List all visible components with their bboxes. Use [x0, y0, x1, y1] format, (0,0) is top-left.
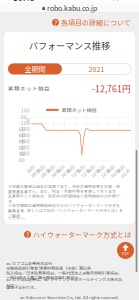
staticText: TOP — [121, 251, 129, 256]
staticText: 10:45 — [13, 0, 35, 3]
staticText: 10000 — [21, 107, 30, 120]
staticText: ? — [54, 17, 57, 28]
staticText: -60000 — [19, 150, 30, 163]
staticText: au Kabucom Securities Co., Ltd. All righ… — [20, 294, 119, 300]
staticText: 2021/10/01 — [48, 165, 58, 177]
staticText: 累積ネット損益 — [61, 106, 96, 114]
staticText: -12,761円 — [92, 82, 131, 95]
button[interactable]: ? — [0, 230, 139, 239]
staticText: -10000 — [19, 120, 30, 133]
staticText: 2021/09/01 — [28, 165, 38, 177]
staticText: ? — [26, 229, 29, 240]
staticText: 2021/11/01 — [68, 165, 78, 177]
staticText: -30000 — [19, 132, 30, 145]
staticText: 各項目の詳細について — [61, 17, 131, 27]
staticText: -50000 — [19, 144, 30, 157]
staticText: 一般社団法人第二種金融商品取引業協会 — [6, 274, 78, 280]
staticText: au カブコム証券は、au フィナンシャルホールディングス株式会社の — [6, 276, 122, 288]
staticText: 2022/01/05 — [108, 165, 118, 177]
staticText: robo.kabu.co.jp — [47, 3, 97, 13]
staticText: 2021/10/18 — [58, 165, 68, 177]
staticText: ではありません。また、税金・手数料等を考慮しておりません。 — [8, 188, 116, 199]
staticText: 2021/12/16 — [98, 165, 108, 177]
staticText: 2021/12/01 — [88, 165, 98, 177]
staticText: 4G — [111, 0, 120, 2]
staticText: -20000 — [19, 126, 30, 139]
staticText: ください。 — [8, 215, 28, 221]
staticText: ※成功報酬は運用開始時点からのハイウォーターマーク方式を採用して — [8, 203, 120, 214]
button[interactable]: 2021 — [62, 63, 131, 74]
staticText: 全期間 — [24, 64, 45, 74]
staticText: au カブコム証券株式会社 — [6, 260, 52, 266]
button[interactable]: Scroll to top — [117, 242, 134, 259]
staticText: パフォーマンス推移 — [29, 39, 110, 52]
staticText: 2021/11/16 — [78, 165, 88, 177]
staticText: 累積ネット損益 — [8, 84, 50, 92]
staticText: 0 — [27, 117, 30, 123]
staticText: 2022/01/20 — [118, 165, 128, 177]
staticText: ※累積ネット損益は、設定来の評価損益と実現損益の合計額です。 — [8, 193, 120, 204]
staticText: 加入協会／日本証券業協会、一般社団法人金融先物取引業協会、 — [6, 270, 122, 276]
button[interactable]: 全期間 — [8, 63, 62, 74]
button[interactable]: ? — [0, 18, 139, 27]
staticText: おります。詳しくは下記の「ハイウォーターマーク方式とは」をご確認 — [8, 207, 123, 219]
staticText: 金融商品取引業者 関東財務局長（金商）第61号 — [6, 265, 91, 271]
staticText: ※記載の数値は過去の実績であり、将来の運用成果を示唆・保証するもの — [8, 183, 120, 195]
staticText: 2021 — [88, 64, 104, 74]
staticText: -40000 — [19, 138, 30, 151]
staticText: 連結子会社です。 — [6, 284, 38, 290]
staticText: ハイウォーターマーク方式とは — [33, 229, 131, 239]
staticText: 2021/09/16 — [38, 165, 48, 177]
